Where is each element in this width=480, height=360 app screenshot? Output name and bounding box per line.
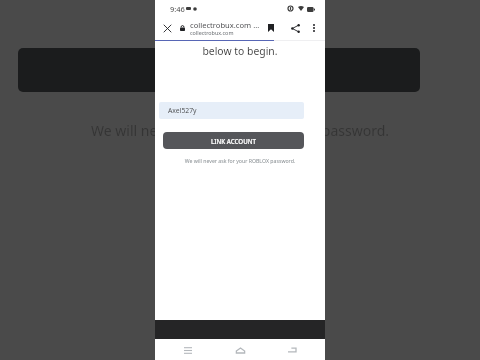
- staticText: LINK ACCOUNT: [211, 137, 257, 145]
- button[interactable]: Home: [232, 342, 248, 358]
- staticText: We will never ask for your ROBLOX passwo…: [155, 157, 325, 164]
- staticText: Axel527y: [168, 106, 197, 115]
- staticText: collectrobux.com: [190, 29, 234, 36]
- button[interactable]: More options: [306, 20, 322, 36]
- button[interactable]: LINK ACCOUNT: [163, 132, 304, 149]
- staticText: below to begin.: [155, 44, 325, 58]
- button[interactable]: Close: [159, 20, 175, 36]
- button[interactable]: Back: [284, 342, 300, 358]
- button[interactable]: Bookmark: [263, 20, 279, 36]
- button[interactable]: Recents: [180, 342, 196, 358]
- button[interactable]: Axel527y: [159, 102, 304, 119]
- button[interactable]: Share: [287, 20, 303, 36]
- staticText: 9:46: [170, 4, 185, 14]
- staticText: We will never ask for your ROBLOX passwo…: [0, 121, 480, 140]
- staticText: collectrobux.com …: [190, 20, 260, 30]
